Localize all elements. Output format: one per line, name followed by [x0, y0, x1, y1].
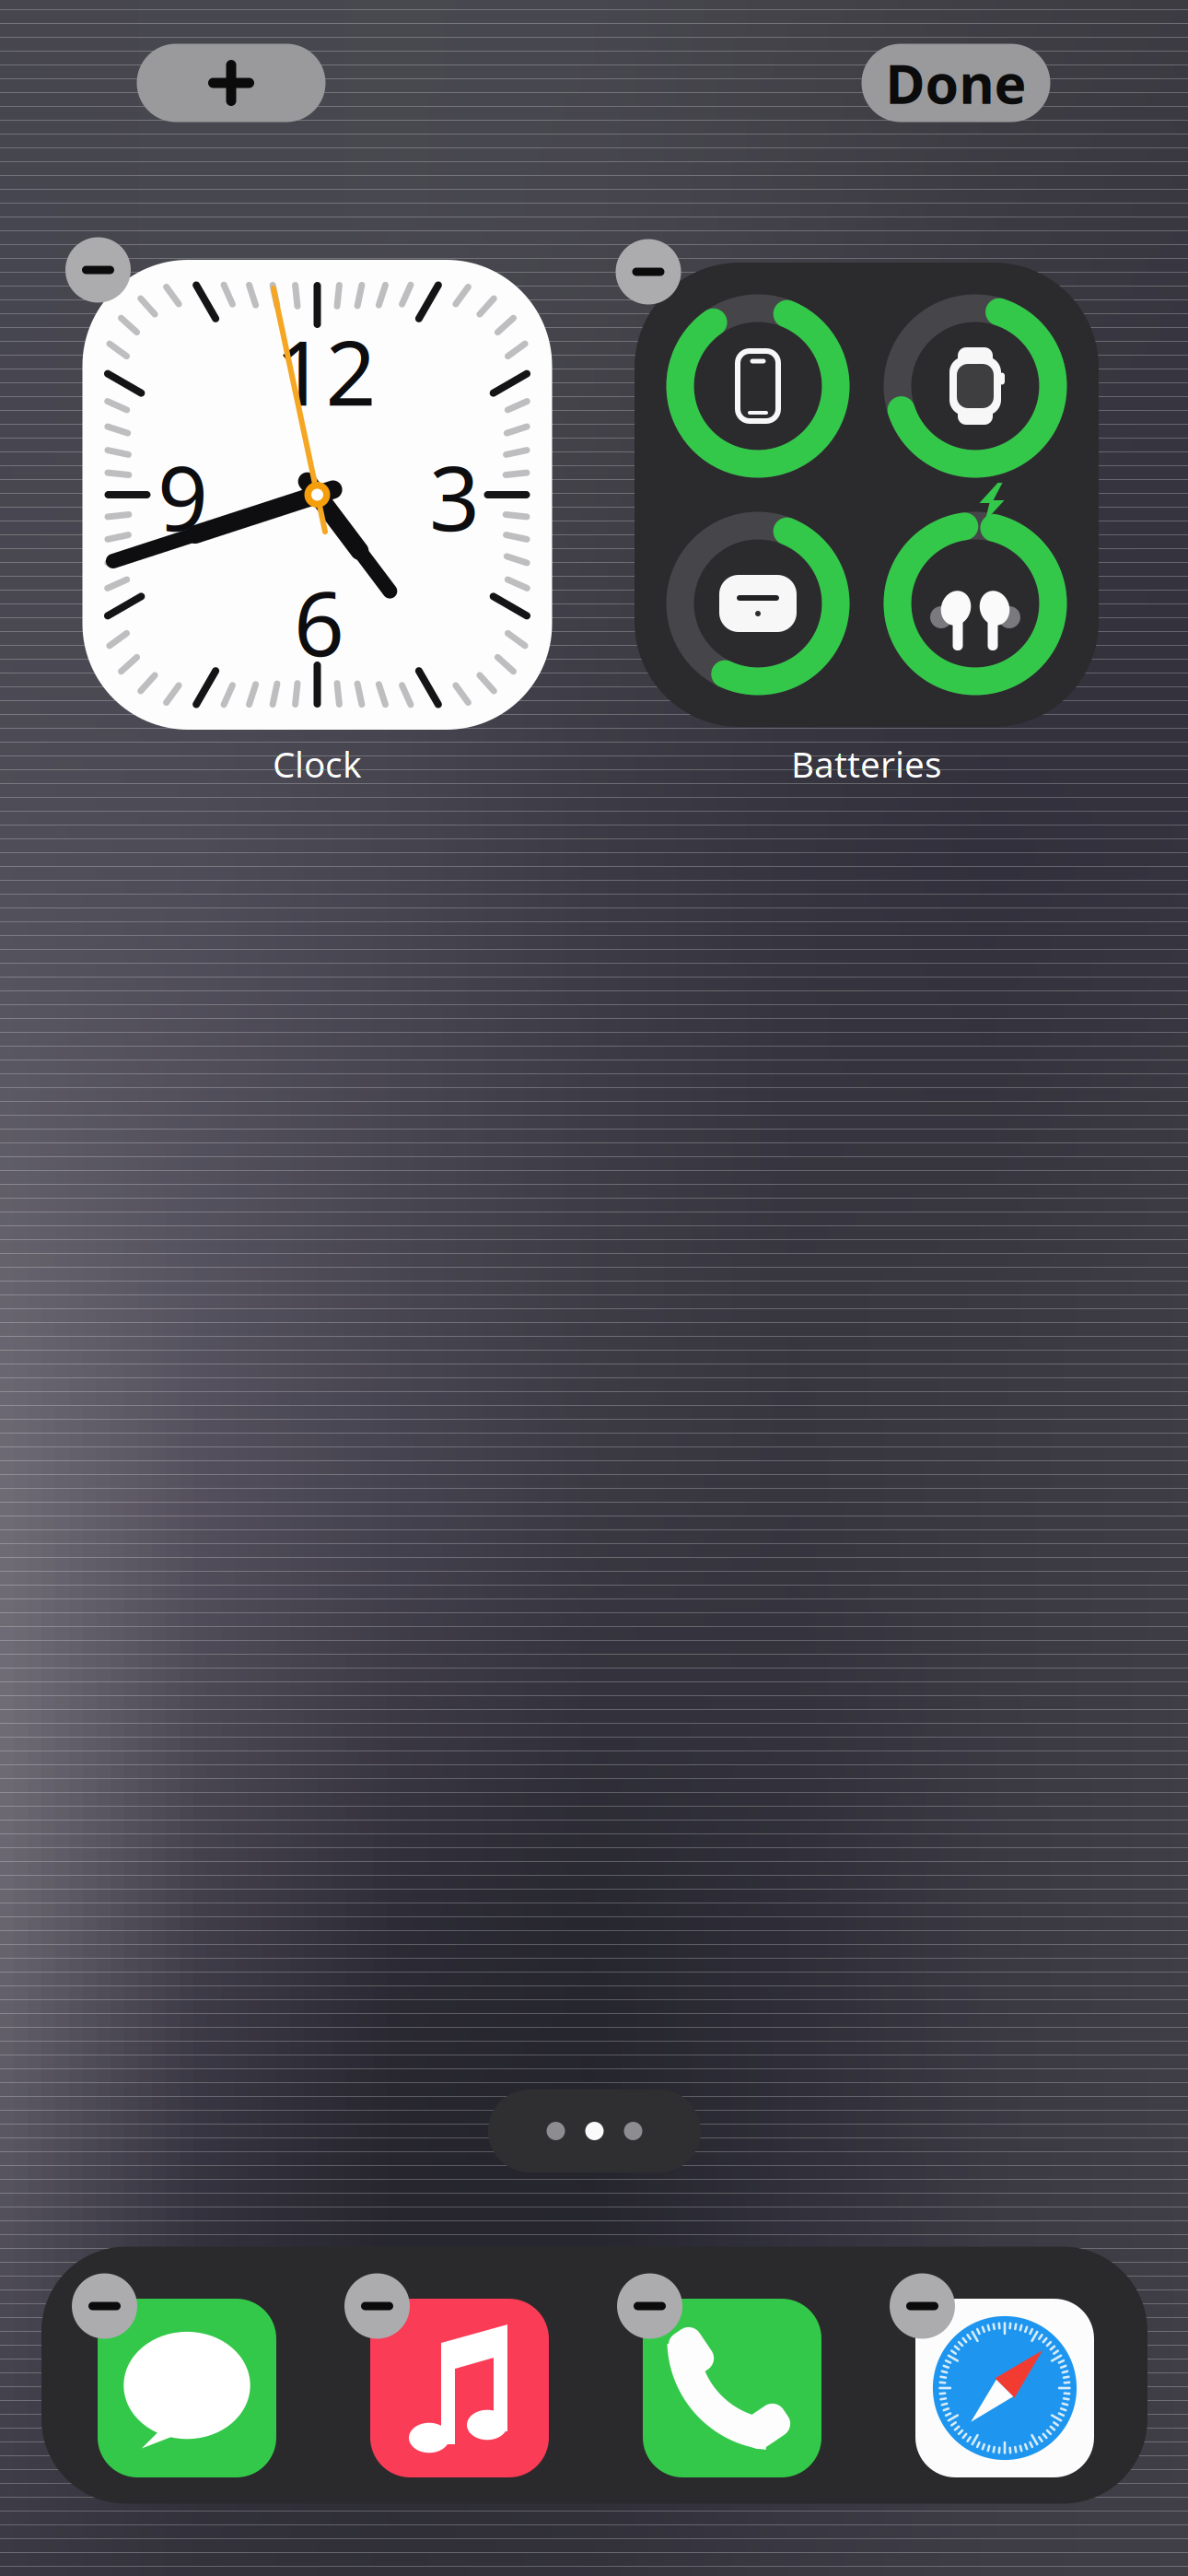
button[interactable]: Remove [616, 239, 681, 304]
staticText: Clock [273, 740, 362, 787]
button[interactable]: Phone [643, 2299, 821, 2477]
button[interactable]: Music [370, 2299, 549, 2477]
button[interactable]: Remove [65, 237, 131, 303]
staticText: 12 [275, 313, 376, 430]
staticText: 3 [429, 438, 480, 555]
button[interactable]: Add Widget [137, 44, 326, 122]
staticText: Batteries [791, 740, 942, 787]
staticText: 9 [157, 438, 208, 555]
button[interactable]: Remove [344, 2273, 410, 2339]
staticText: Done [885, 47, 1026, 119]
button[interactable]: Remove [72, 2273, 137, 2339]
button[interactable]: Messages [98, 2299, 276, 2477]
button[interactable]: Done [862, 44, 1050, 122]
button[interactable]: Safari [915, 2299, 1094, 2477]
button[interactable]: Remove [617, 2273, 682, 2339]
staticText: 6 [294, 563, 344, 681]
button[interactable]: Remove [890, 2273, 955, 2339]
